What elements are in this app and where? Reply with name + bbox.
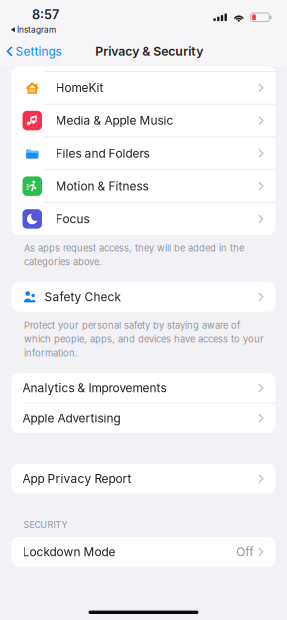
staticText: Protect your personal safety by staying … bbox=[24, 320, 240, 331]
button[interactable]: Media & Apple Music bbox=[11, 104, 275, 137]
staticText: HomeKit bbox=[55, 81, 103, 95]
staticText: which people, apps, and devices have acc… bbox=[24, 334, 264, 345]
staticText: information. bbox=[24, 347, 78, 359]
staticText: categories above. bbox=[24, 256, 102, 268]
staticText: Motion & Fitness bbox=[55, 179, 148, 193]
button[interactable]: Motion & Fitness bbox=[11, 170, 275, 202]
staticText: Files and Folders bbox=[55, 146, 149, 161]
staticText: Off bbox=[236, 545, 253, 559]
button[interactable]: Settings bbox=[0, 37, 61, 66]
button[interactable]: Apple Advertising bbox=[11, 403, 275, 433]
button[interactable]: Files and Folders bbox=[11, 137, 275, 169]
button[interactable]: App Privacy Report bbox=[11, 464, 275, 493]
staticText: Privacy & Security bbox=[95, 44, 203, 59]
staticText: Apple Advertising bbox=[22, 411, 120, 425]
staticText: 8:57 bbox=[32, 7, 59, 22]
button[interactable]: Lockdown Mode bbox=[11, 537, 275, 567]
staticText: Lockdown Mode bbox=[22, 545, 115, 559]
staticText: Focus bbox=[55, 212, 89, 226]
button[interactable]: Analytics & Improvements bbox=[11, 373, 275, 403]
staticText: As apps request access, they will be add… bbox=[24, 242, 244, 254]
staticText: Media & Apple Music bbox=[55, 113, 173, 128]
staticText: Instagram bbox=[17, 25, 56, 35]
staticText: Analytics & Improvements bbox=[22, 381, 166, 395]
button[interactable]: Focus bbox=[11, 203, 275, 235]
staticText: Settings bbox=[15, 44, 61, 59]
staticText: Safety Check bbox=[44, 290, 121, 304]
button[interactable]: HomeKit bbox=[11, 72, 275, 104]
button[interactable]: Safety Check bbox=[11, 282, 275, 312]
staticText: SECURITY bbox=[23, 519, 67, 530]
staticText: App Privacy Report bbox=[22, 471, 131, 486]
